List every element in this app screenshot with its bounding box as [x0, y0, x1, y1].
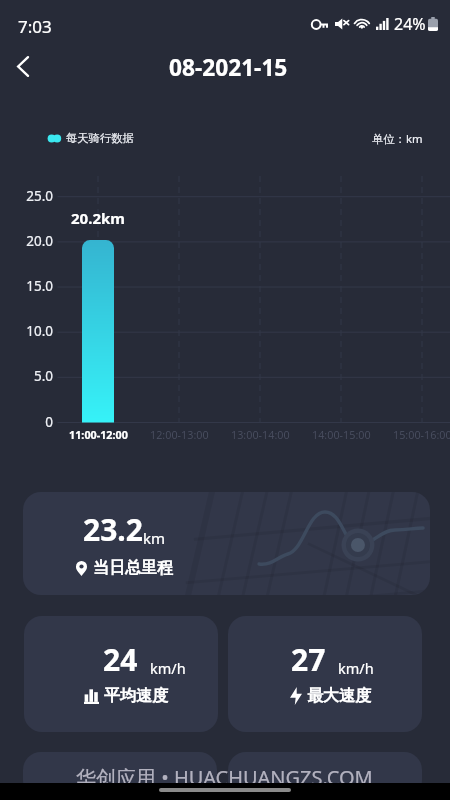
button[interactable]: [23, 752, 217, 798]
staticText: 23.2: [83, 509, 143, 550]
staticText: 10.0: [0, 322, 53, 340]
staticText: km/h: [150, 658, 186, 678]
staticText: 单位：km: [372, 131, 423, 146]
staticText: 24%: [394, 13, 426, 35]
button[interactable]: 24: [24, 616, 218, 732]
button[interactable]: 23.2: [23, 492, 430, 595]
staticText: 25.0: [0, 187, 53, 205]
staticText: 0: [0, 413, 53, 431]
staticText: 20.2km: [71, 208, 125, 228]
staticText: 13:00-14:00: [231, 427, 290, 442]
staticText: 平均速度: [104, 686, 168, 706]
staticText: 20.0: [0, 232, 53, 250]
button[interactable]: Back: [1, 44, 45, 88]
staticText: 14:00-15:00: [312, 427, 371, 442]
staticText: 11:00-12:00: [69, 427, 128, 442]
staticText: 华创应用 • HUACHUANGZS.COM: [76, 764, 373, 791]
staticText: 24: [103, 639, 138, 680]
staticText: 08-2021-15: [169, 52, 288, 83]
staticText: km: [143, 528, 166, 548]
staticText: km/h: [338, 658, 374, 678]
staticText: 7:03: [18, 15, 52, 38]
staticText: 12:00-13:00: [150, 427, 209, 442]
staticText: 27: [291, 639, 326, 680]
button[interactable]: [228, 752, 422, 798]
button[interactable]: 27: [228, 616, 422, 732]
staticText: 5.0: [0, 367, 53, 385]
staticText: 最大速度: [307, 686, 371, 706]
staticText: 每天骑行数据: [66, 131, 134, 145]
staticText: 15:00-16:00: [393, 427, 450, 442]
staticText: 15.0: [0, 277, 53, 295]
staticText: 当日总里程: [93, 558, 173, 578]
